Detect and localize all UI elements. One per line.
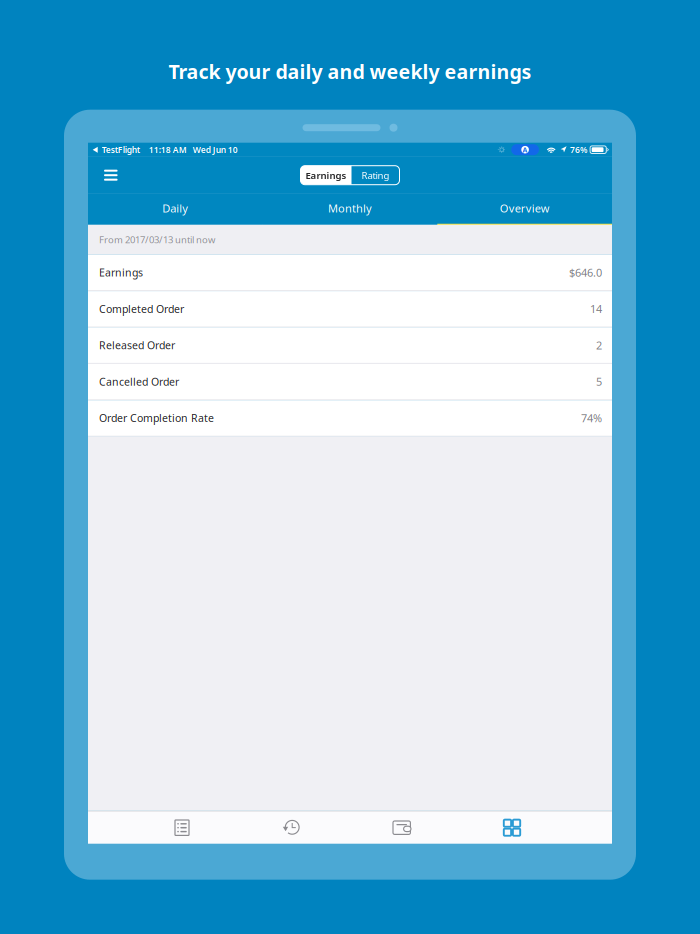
staticText: Earnings (99, 265, 143, 279)
staticText: TestFlight (102, 144, 140, 155)
button[interactable]: More (457, 812, 567, 844)
button[interactable]: Released Order (88, 327, 612, 364)
staticText: Rating (361, 169, 389, 182)
button[interactable]: Wallet (347, 812, 457, 844)
button[interactable]: Rating (351, 166, 399, 185)
staticText: From 2017/03/13 until now (99, 233, 215, 246)
staticText: 74% (581, 411, 602, 425)
staticText: Daily (162, 201, 188, 216)
staticText: $646.0 (569, 265, 602, 280)
button[interactable]: Earnings (88, 255, 612, 291)
button[interactable]: Daily (88, 194, 263, 225)
staticText: Earnings (305, 169, 346, 182)
staticText: 5 (596, 374, 602, 389)
staticText: Cancelled Order (99, 374, 179, 389)
staticText: Wed Jun 10 (193, 144, 238, 155)
staticText: 14 (590, 301, 602, 316)
staticText: 2 (596, 338, 602, 353)
button[interactable]: Overview (437, 194, 612, 225)
button[interactable]: Orders (127, 812, 237, 844)
staticText: Track your daily and weekly earnings (168, 58, 531, 85)
button[interactable]: Monthly (263, 194, 437, 225)
staticText: Completed Order (99, 302, 184, 316)
button[interactable]: History (237, 812, 347, 844)
staticText: Released Order (99, 338, 175, 352)
button[interactable]: Menu (95, 159, 127, 191)
staticText: Order Completion Rate (99, 411, 214, 425)
staticText: Monthly (328, 201, 372, 216)
staticText: A (523, 145, 528, 154)
button[interactable]: Order Completion Rate (88, 400, 612, 437)
staticText: 76% (570, 144, 587, 155)
staticText: 11:18 AM (149, 144, 187, 155)
button[interactable]: Completed Order (88, 291, 612, 327)
button[interactable]: Earnings (300, 166, 351, 185)
button[interactable]: Cancelled Order (88, 364, 612, 400)
staticText: Overview (500, 201, 550, 216)
